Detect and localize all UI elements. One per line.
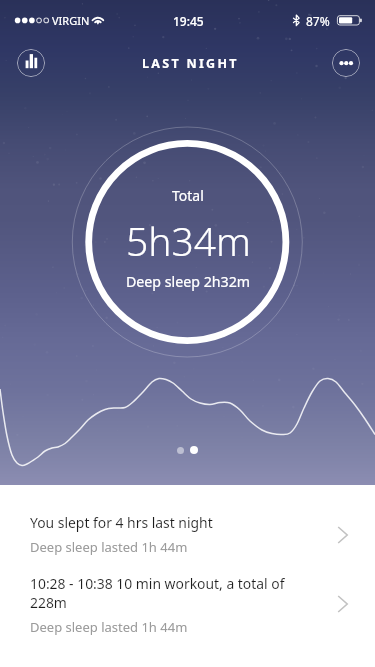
staticText: Deep sleep lasted 1h 44m (30, 618, 188, 636)
staticText: Deep sleep 2h32m (126, 272, 251, 291)
staticText: 5h34m (126, 214, 251, 267)
staticText: 228m (30, 593, 67, 612)
staticText: VIRGIN (52, 13, 90, 28)
staticText: 87% (306, 13, 330, 29)
staticText: Deep sleep lasted 1h 44m (30, 538, 188, 556)
button[interactable]: You slept for 4 hrs last night (0, 485, 375, 554)
staticText: LAST NIGHT (142, 55, 239, 72)
staticText: You slept for 4 hrs last night (30, 513, 213, 532)
staticText: Total (172, 186, 204, 205)
staticText: 10:28 - 10:38 10 min workout, a total of (30, 574, 285, 593)
staticText: 19:45 (173, 13, 204, 29)
button[interactable]: Statistics (17, 49, 45, 77)
button[interactable]: More options (332, 49, 360, 77)
button[interactable]: 10:28 - 10:38 10 min workout, a total of… (0, 554, 375, 642)
